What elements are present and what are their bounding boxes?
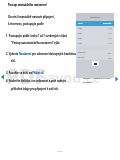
staticText: 2. Vyberte Nastavení pro zobrazení dostu… xyxy=(6,52,81,55)
staticText: Chcete-li manuálně nastavit připojení, xyxy=(8,15,55,18)
staticText: 4:03 xyxy=(108,27,112,30)
staticText: "Postup automatického nastavení" výše. xyxy=(11,41,61,44)
staticText: sítí. xyxy=(11,59,16,62)
staticText: Jiná síť xyxy=(78,56,85,59)
staticText: 4:03 xyxy=(108,32,112,35)
staticText: navod.cz xyxy=(38,68,100,87)
staticText: 4. Stiskněte tlačítko ▾ na zobrazení a p… xyxy=(6,79,66,82)
staticText: k internetu, postupujte podle xyxy=(8,22,44,25)
staticText: k internetu, postupujte podle xyxy=(8,22,44,25)
staticText: 4. Stiskněte tlačítko ▾ na zobrazení a p… xyxy=(6,79,66,82)
staticText: Chcete-li manuálně nastavit připojení, xyxy=(8,15,55,18)
staticText: Wi-Fi xyxy=(78,22,83,25)
staticText: 1. Postupujte podle kroků 1 až 7 uvedený… xyxy=(6,34,68,37)
staticText: Sítě xyxy=(78,27,82,30)
staticText: 4:03 xyxy=(108,37,112,40)
staticText: Postup manuálního nastavení xyxy=(8,3,47,7)
staticText: Sítě xyxy=(78,32,82,35)
staticText: příslušné údaje pro připojení k vaší sít… xyxy=(11,87,59,90)
staticText: 4:03 xyxy=(108,57,112,59)
staticText: PDF xyxy=(6,62,46,91)
staticText: Zap. xyxy=(108,52,112,54)
staticText: 2. Vyberte Nastavení pro zobrazení dostu… xyxy=(6,52,81,55)
staticText: "Postup automatického nastavení" výše. xyxy=(11,41,61,44)
staticText: Postup manuálního nastavení xyxy=(8,3,47,7)
staticText: Sítě xyxy=(78,42,82,45)
staticText: Obrázek 1: Nastavení Wi-Fi sítě v telefo… xyxy=(83,77,111,84)
staticText: 4:03 xyxy=(108,42,112,45)
staticText: Sítě xyxy=(78,37,82,40)
staticText: 1. Postupujte podle kroků 1 až 7 uvedený… xyxy=(6,34,68,37)
staticText: Zapnuto xyxy=(103,22,112,25)
staticText: Moje síť xyxy=(78,51,86,54)
staticText: příslušné údaje pro připojení k vaší sít… xyxy=(11,87,59,90)
staticText: Nastavení xyxy=(90,16,101,19)
staticText: 3. Posuňte se dolů na Přidat síť. xyxy=(6,71,45,74)
staticText: Další xyxy=(57,149,63,152)
staticText: sítí. xyxy=(11,59,16,62)
staticText: 3. Posuňte se dolů na Přidat síť. xyxy=(6,71,45,74)
staticText: Obrázek 1: Nastavení Wi-Fi sítě v telefo… xyxy=(83,77,111,84)
